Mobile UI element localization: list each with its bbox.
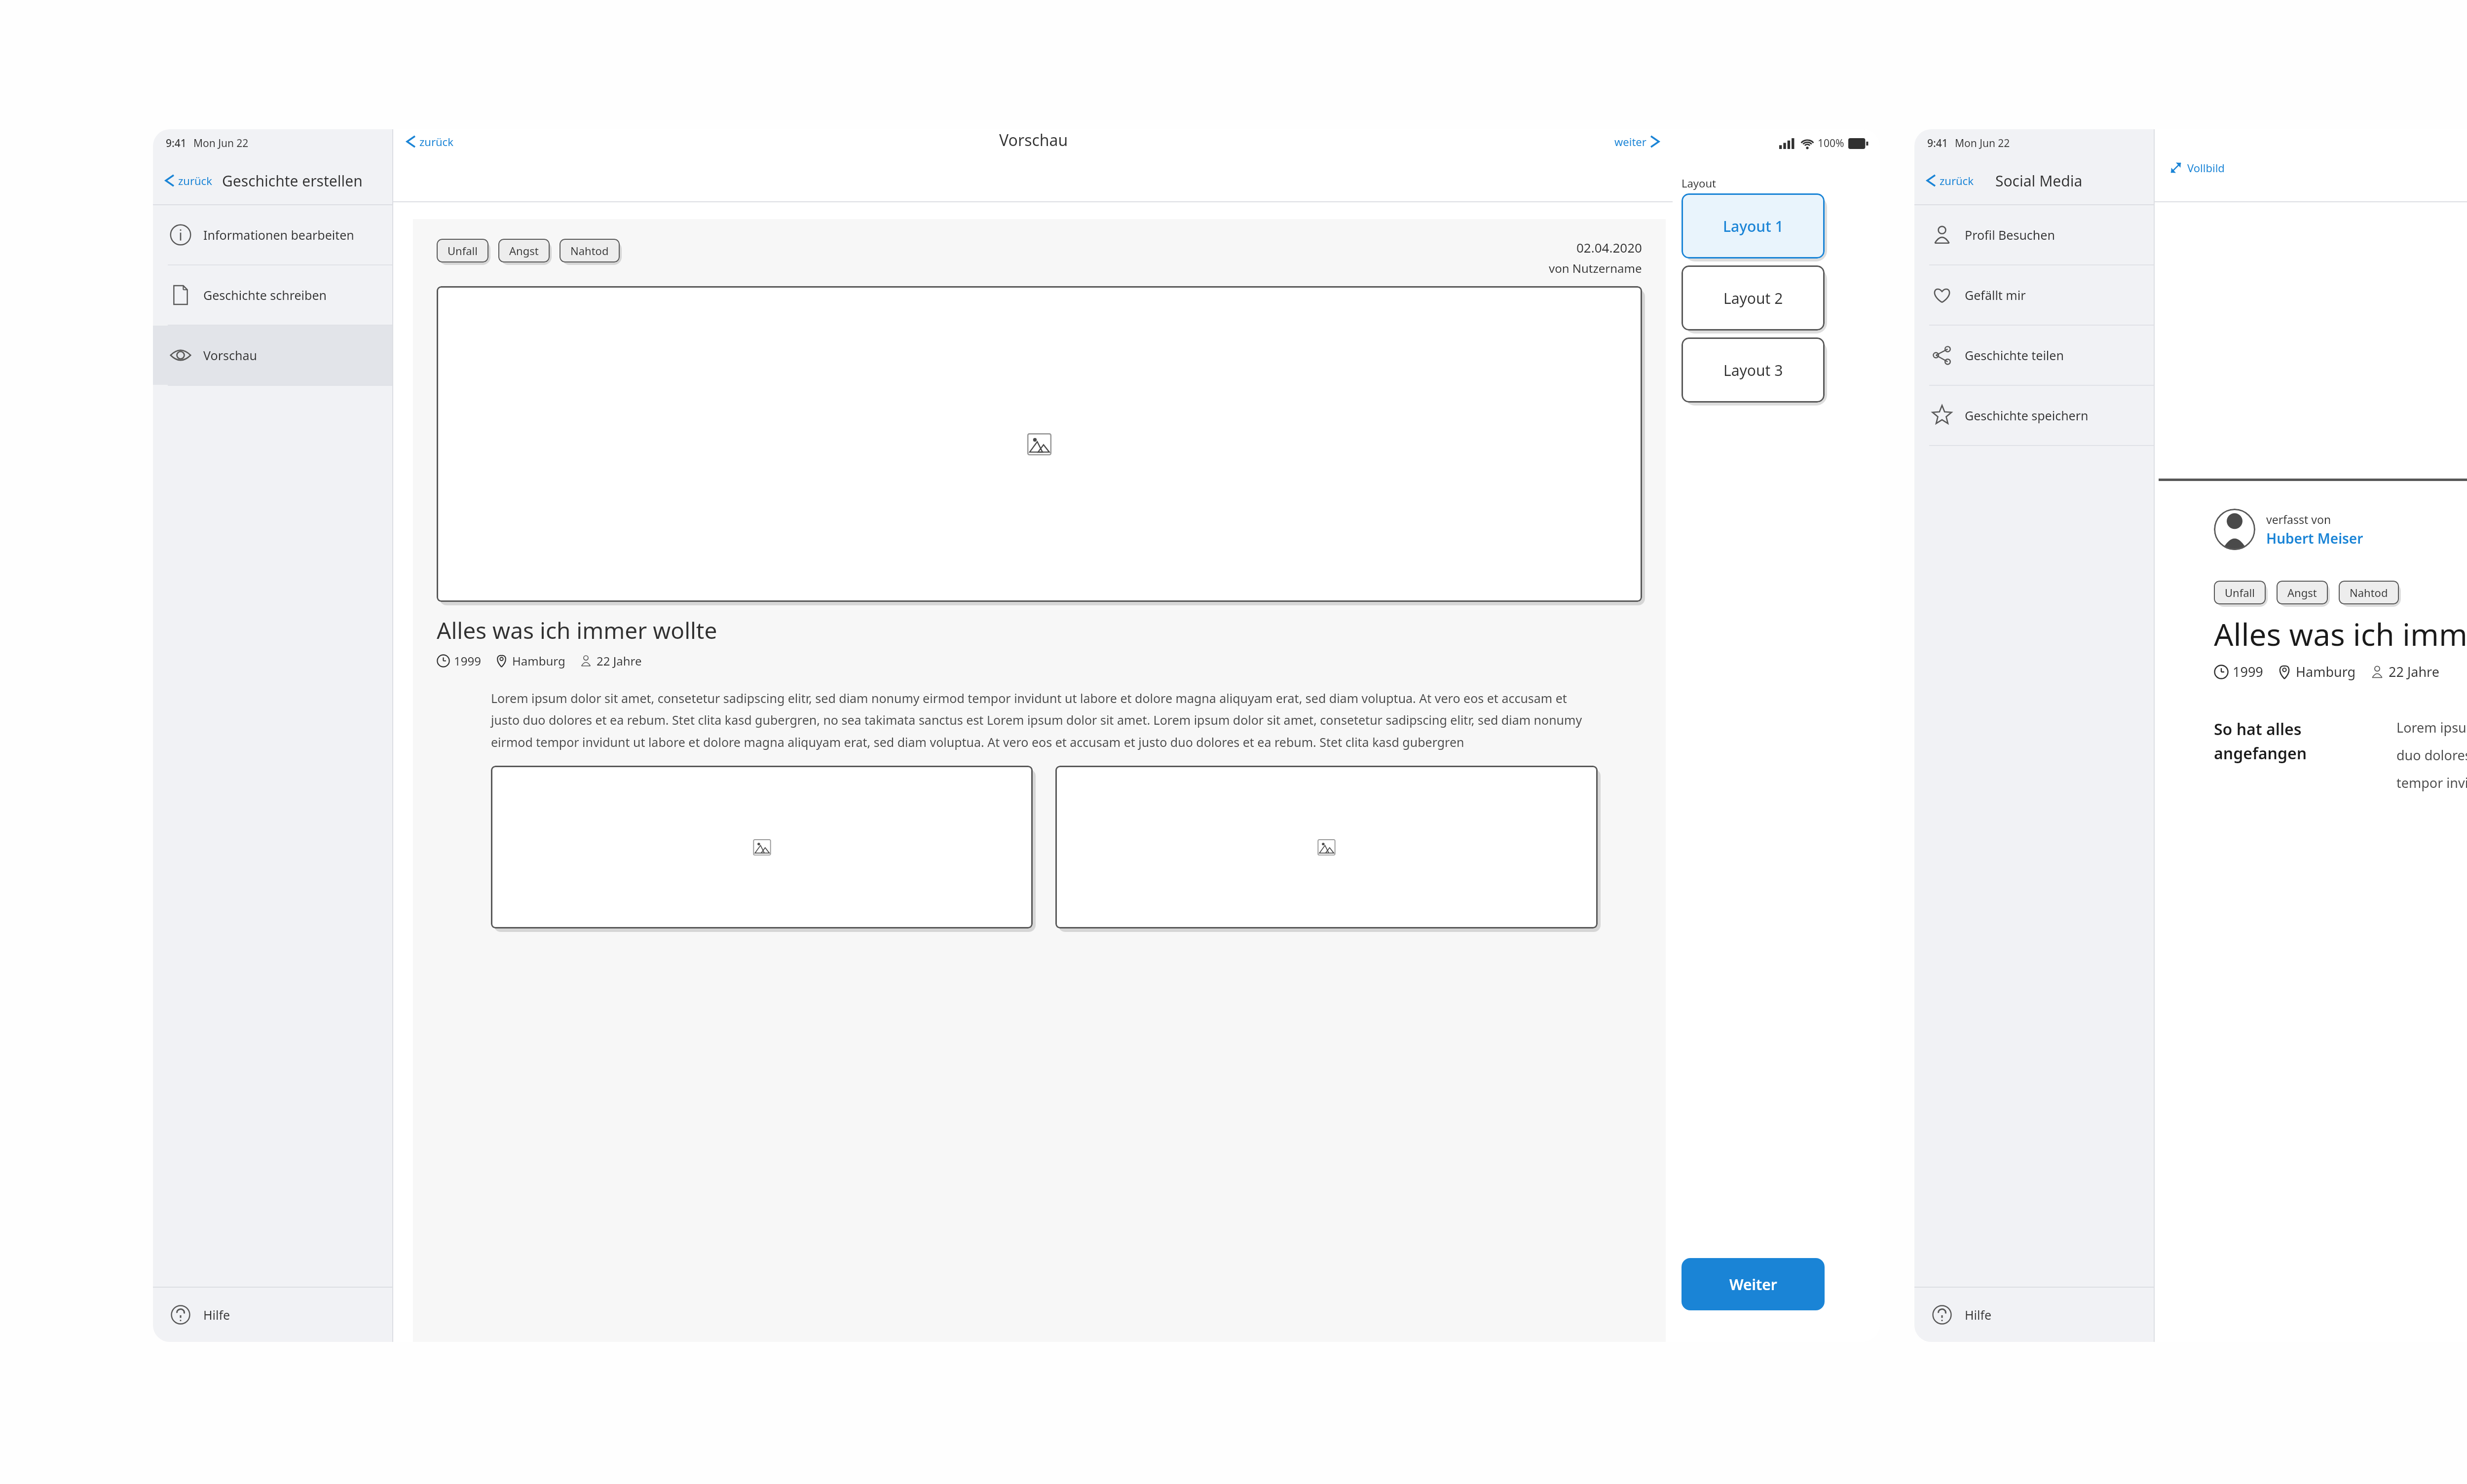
button[interactable] [2214,509,2255,550]
button[interactable]: Geschichte speichern [1914,386,2154,445]
staticText: Hamburg [512,653,565,669]
other: Hilfe [1931,1304,1953,1326]
staticText: Vorschau [999,129,1068,151]
staticText: zurück [419,134,453,149]
button[interactable]: Nahtod [2339,581,2399,604]
staticText: Layout 3 [1723,360,1783,380]
staticText: zurück [178,173,212,188]
staticText: Unfall [2225,585,2255,600]
staticText: Mon Jun 22 [193,136,249,150]
button[interactable]: Geschichte schreiben [153,265,392,325]
button[interactable]: Angst [2277,581,2328,604]
other: Geschichte schreiben [170,284,191,306]
button[interactable]: Angst [498,239,550,262]
staticText: So hat alles angefangen [2214,718,2377,764]
other: Gefällt mir [1931,284,1953,306]
other: Bild [752,838,772,857]
staticText: von Nutzername [1549,260,1642,276]
staticText: Alles was ich immer wollte [2214,613,2467,655]
button[interactable]: Vollbild [2169,160,2225,175]
button[interactable]: Unfall [2214,581,2266,604]
other: Vollbild [2169,161,2182,174]
staticText: Hilfe [1965,1306,1992,1323]
staticText: 9:41 [1927,136,1948,150]
other: Profil [579,654,593,668]
staticText: Geschichte schreiben [203,287,327,303]
button[interactable]: Nahtod [560,239,620,262]
other: Hilfe [170,1304,191,1326]
staticText: Informationen bearbeiten [203,226,354,243]
staticText: weiter [1614,134,1646,149]
staticText: 9:41 [166,136,187,150]
staticText: Lorem ipsum dolor sit amet, consetetur s… [491,690,1598,751]
button[interactable]: Unfall [437,239,488,262]
staticText: Profil Besuchen [1965,226,2055,243]
staticText: Mon Jun 22 [1955,136,2010,150]
button[interactable]: Geschichte teilen [1914,326,2154,385]
button[interactable]: Weiter [1682,1258,1825,1310]
staticText: Angst [509,243,539,258]
other: Profil [2370,665,2385,679]
staticText: Gefällt mir [1965,287,2026,303]
other: Geschichte speichern [1931,405,1953,426]
staticText: 22 Jahre [2389,663,2439,681]
staticText: Vollbild [2187,160,2225,175]
staticText: Weiter [1729,1274,1777,1295]
button[interactable]: Layout 2 [1682,265,1825,331]
other: Vorschau [170,344,191,366]
staticText: Layout 2 [1723,288,1783,308]
staticText: 100% [1818,136,1844,150]
staticText: Unfall [448,243,478,258]
button[interactable]: Layout 1 [1682,193,1825,259]
staticText: Nahtod [570,243,609,258]
button[interactable]: Layout 3 [1682,337,1825,403]
button[interactable]: Bild [491,766,1033,928]
button[interactable]: Informationen [153,205,392,264]
button[interactable]: Hubert Meiser [2266,529,2363,548]
button[interactable]: Hilfe [1914,1288,2154,1342]
staticText: 1999 [2233,663,2263,681]
staticText: Hilfe [203,1306,230,1323]
other: Profil [1931,224,1953,246]
staticText: Geschichte erstellen [222,171,363,191]
button[interactable]: Bild [1055,766,1598,928]
staticText: Geschichte teilen [1965,347,2064,364]
staticText: 02.04.2020 [1576,239,1642,256]
button[interactable]: Bild [437,286,1642,602]
staticText: Geschichte speichern [1965,407,2089,424]
staticText: zurück [1940,173,1974,188]
staticText: Social Media [1995,171,2083,191]
staticText: Hamburg [2296,663,2356,681]
button[interactable]: Vorschau [153,326,392,385]
button[interactable]: Profil [1914,205,2154,264]
other: Bild [1317,838,1336,857]
staticText: Alles was ich immer wollte [437,615,717,646]
staticText: Vorschau [203,347,257,364]
staticText: 1999 [454,653,481,669]
other: Informationen [170,224,191,246]
staticText: verfasst von [2266,512,2331,527]
button[interactable]: Hilfe [153,1288,392,1342]
staticText: Layout 1 [1723,216,1784,236]
other: Bild [1026,431,1052,457]
button[interactable]: zurück [1927,173,1979,188]
button[interactable]: zurück [166,173,217,188]
other: Geschichte teilen [1931,344,1953,366]
staticText: Nahtod [2350,585,2388,600]
staticText: 22 Jahre [597,653,642,669]
button[interactable]: Gefällt mir [1914,265,2154,325]
button[interactable]: weiter [1614,134,1659,164]
staticText: Angst [2287,585,2317,600]
button[interactable]: zurück [407,134,453,164]
staticText: Lorem ipsum dolor sit amet, consetetur s… [2396,718,2467,792]
staticText: Layout [1682,176,1716,190]
